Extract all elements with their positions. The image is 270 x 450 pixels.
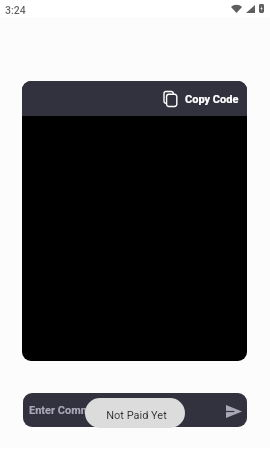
staticText: Copy Code: [185, 93, 239, 106]
staticText: Not Paid Yet: [106, 409, 167, 422]
staticText: Enter Command: [29, 404, 222, 417]
staticText: 3:24: [5, 4, 26, 16]
button[interactable]: Send command: [222, 399, 244, 421]
button[interactable]: Enter Command: [23, 393, 247, 427]
button[interactable]: Copy Code: [155, 86, 247, 112]
